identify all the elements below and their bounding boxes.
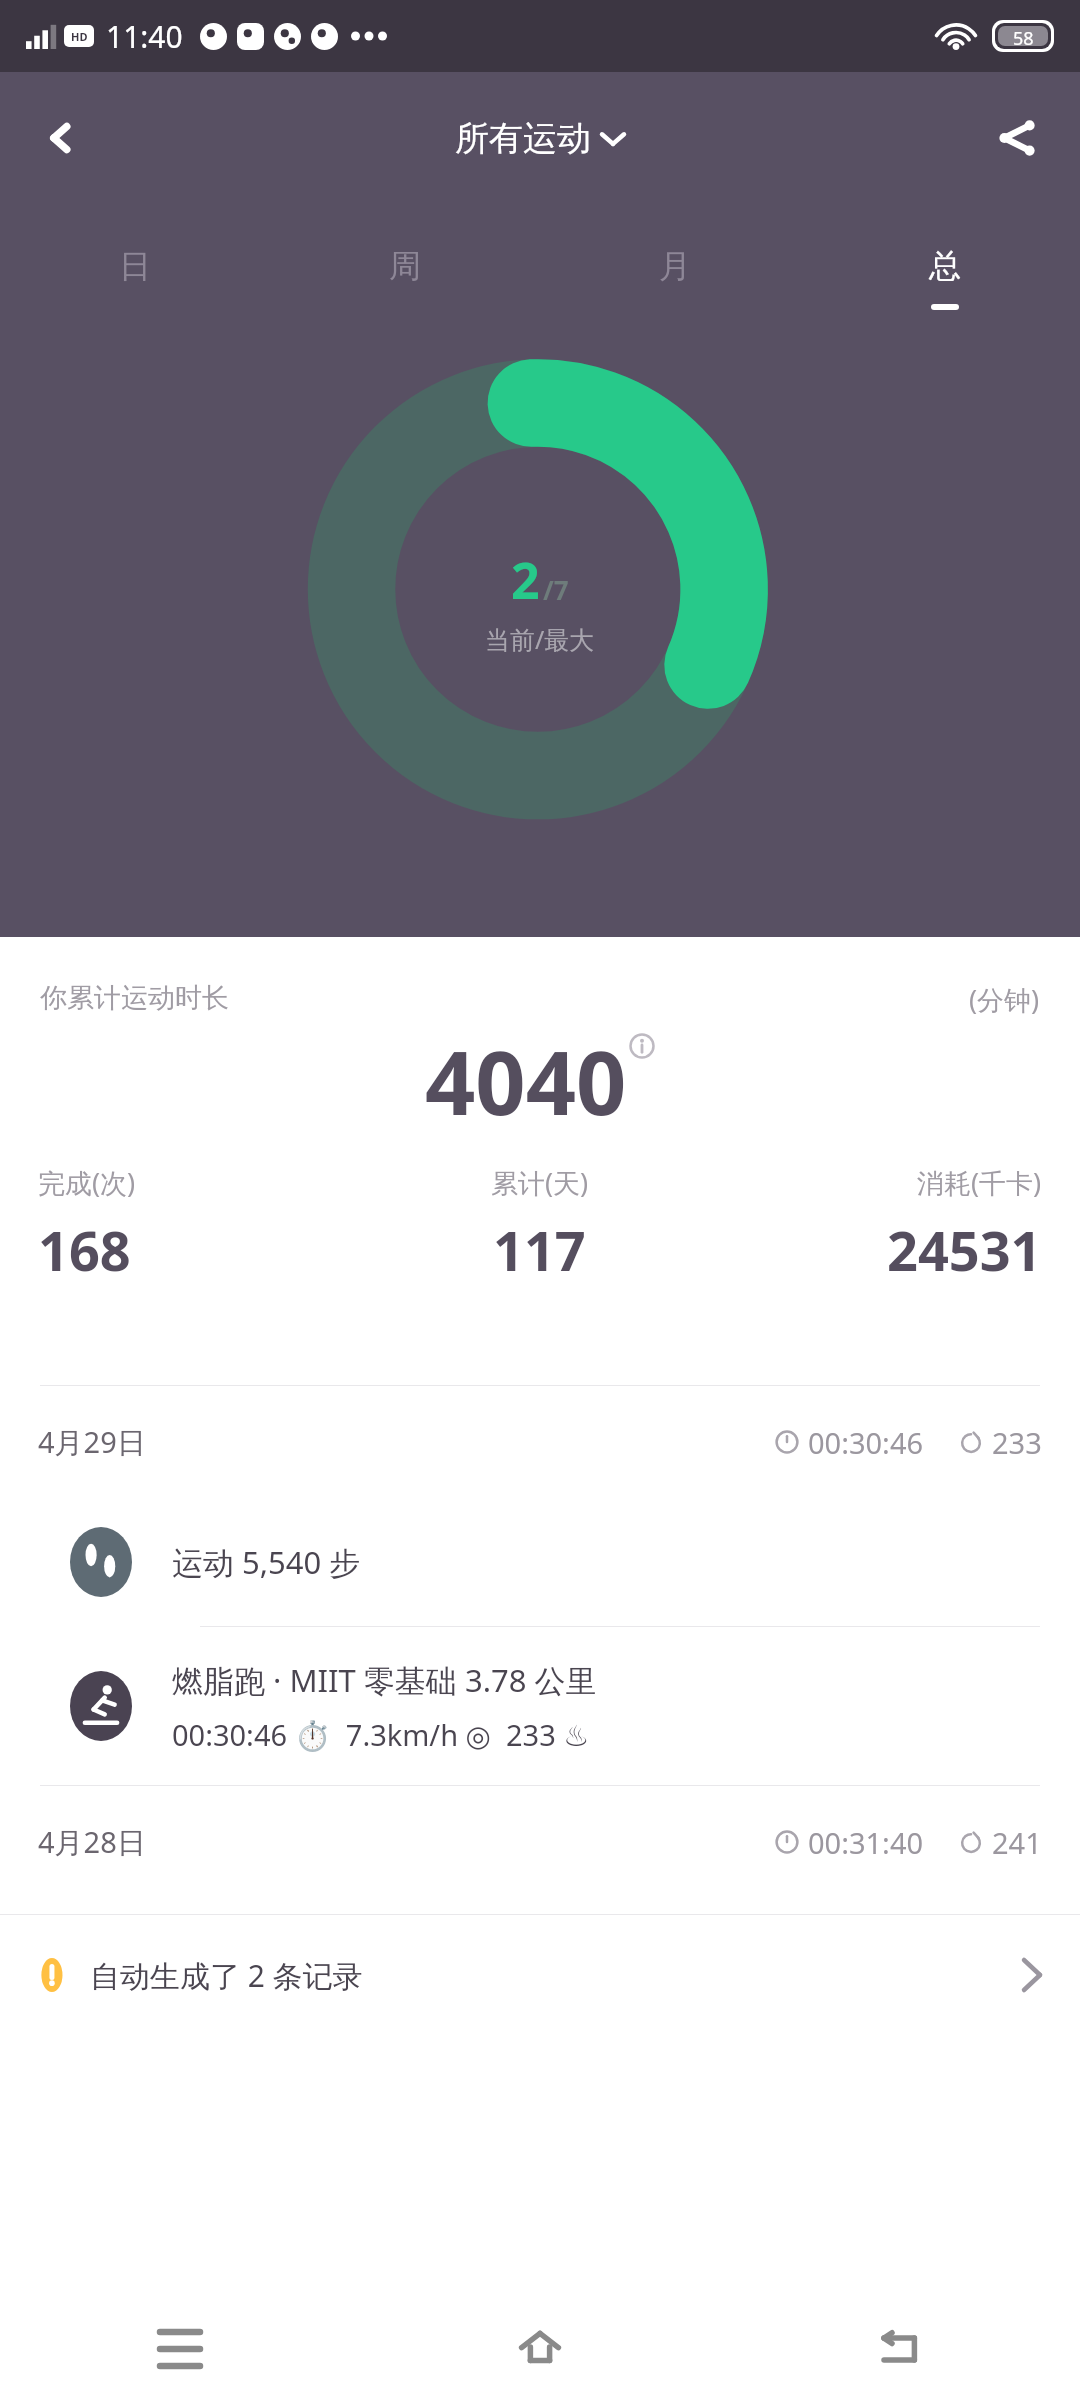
- staticText: 燃脂跑 · MIIT 零基础 3.78 公里: [172, 1659, 597, 1701]
- staticText: 累计(天): [491, 1164, 589, 1201]
- staticText: 117: [493, 1213, 586, 1287]
- staticText: 11:40: [106, 16, 183, 57]
- button[interactable]: 周: [270, 204, 540, 352]
- staticText: 4040: [425, 1021, 627, 1141]
- button[interactable]: 月: [540, 204, 810, 352]
- staticText: 00:31:40: [808, 1823, 924, 1862]
- staticText: 00:30:46: [808, 1423, 924, 1462]
- staticText: 00:30:46 ⏱ 7.3km/h ◎ 233 ♨: [172, 1715, 590, 1754]
- button[interactable]: 总: [810, 204, 1080, 352]
- button[interactable]: 自动生成了 2 条记录: [0, 1915, 1080, 2035]
- staticText: 完成(次): [38, 1164, 136, 1201]
- button[interactable]: Back: [720, 2290, 1080, 2408]
- staticText: 所有运动: [455, 117, 591, 160]
- staticText: 2: [511, 546, 540, 614]
- staticText: (分钟): [969, 981, 1040, 1018]
- button[interactable]: 燃脂跑 · MIIT 零基础 3.78 公里: [0, 1627, 1080, 1785]
- button[interactable]: Back: [18, 95, 104, 181]
- staticText: 总: [929, 246, 961, 286]
- staticText: 运动 5,540 步: [172, 1541, 361, 1583]
- staticText: 日: [119, 246, 151, 286]
- staticText: 消耗(千卡): [917, 1164, 1042, 1201]
- staticText: 你累计运动时长: [40, 981, 229, 1015]
- staticText: 自动生成了 2 条记录: [90, 1955, 363, 1996]
- staticText: 4月28日: [38, 1822, 146, 1862]
- staticText: /7: [543, 572, 569, 607]
- staticText: 241: [992, 1823, 1042, 1862]
- button[interactable]: Recents: [0, 2290, 360, 2408]
- button[interactable]: Home: [360, 2290, 720, 2408]
- staticText: 168: [38, 1213, 131, 1287]
- staticText: HD: [71, 29, 88, 44]
- staticText: 当前/最大: [485, 622, 595, 656]
- staticText: 58: [1013, 26, 1034, 46]
- staticText: 233: [992, 1423, 1042, 1462]
- button[interactable]: 所有运动: [447, 109, 633, 168]
- staticText: 4月29日: [38, 1422, 146, 1462]
- button[interactable]: 运动 5,540 步: [0, 1498, 1080, 1626]
- button[interactable]: 日: [0, 204, 270, 352]
- staticText: 周: [389, 246, 421, 286]
- staticText: 24531: [887, 1213, 1042, 1287]
- button[interactable]: Share: [974, 95, 1060, 181]
- staticText: 月: [659, 246, 691, 286]
